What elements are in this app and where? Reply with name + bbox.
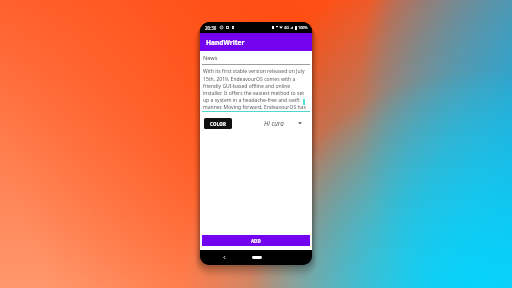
button[interactable]: Select font xyxy=(298,121,302,125)
staticText: ADD xyxy=(251,238,261,244)
staticText: HandWriter xyxy=(206,38,245,47)
button[interactable]: HandWriter xyxy=(200,33,312,51)
staticText: News xyxy=(203,54,218,62)
staticText: COLOR xyxy=(210,121,227,127)
button[interactable]: ADD xyxy=(202,235,310,246)
staticText: 4G xyxy=(284,25,289,30)
staticText: 100% xyxy=(298,25,308,30)
button[interactable]: Home xyxy=(252,256,262,259)
button[interactable]: COLOR xyxy=(204,118,232,129)
button[interactable]: Back xyxy=(222,255,227,260)
staticText: 20:30 xyxy=(205,25,217,31)
button[interactable]: Hi cura xyxy=(264,119,284,127)
staticText: With its first stable version released o… xyxy=(203,68,306,110)
